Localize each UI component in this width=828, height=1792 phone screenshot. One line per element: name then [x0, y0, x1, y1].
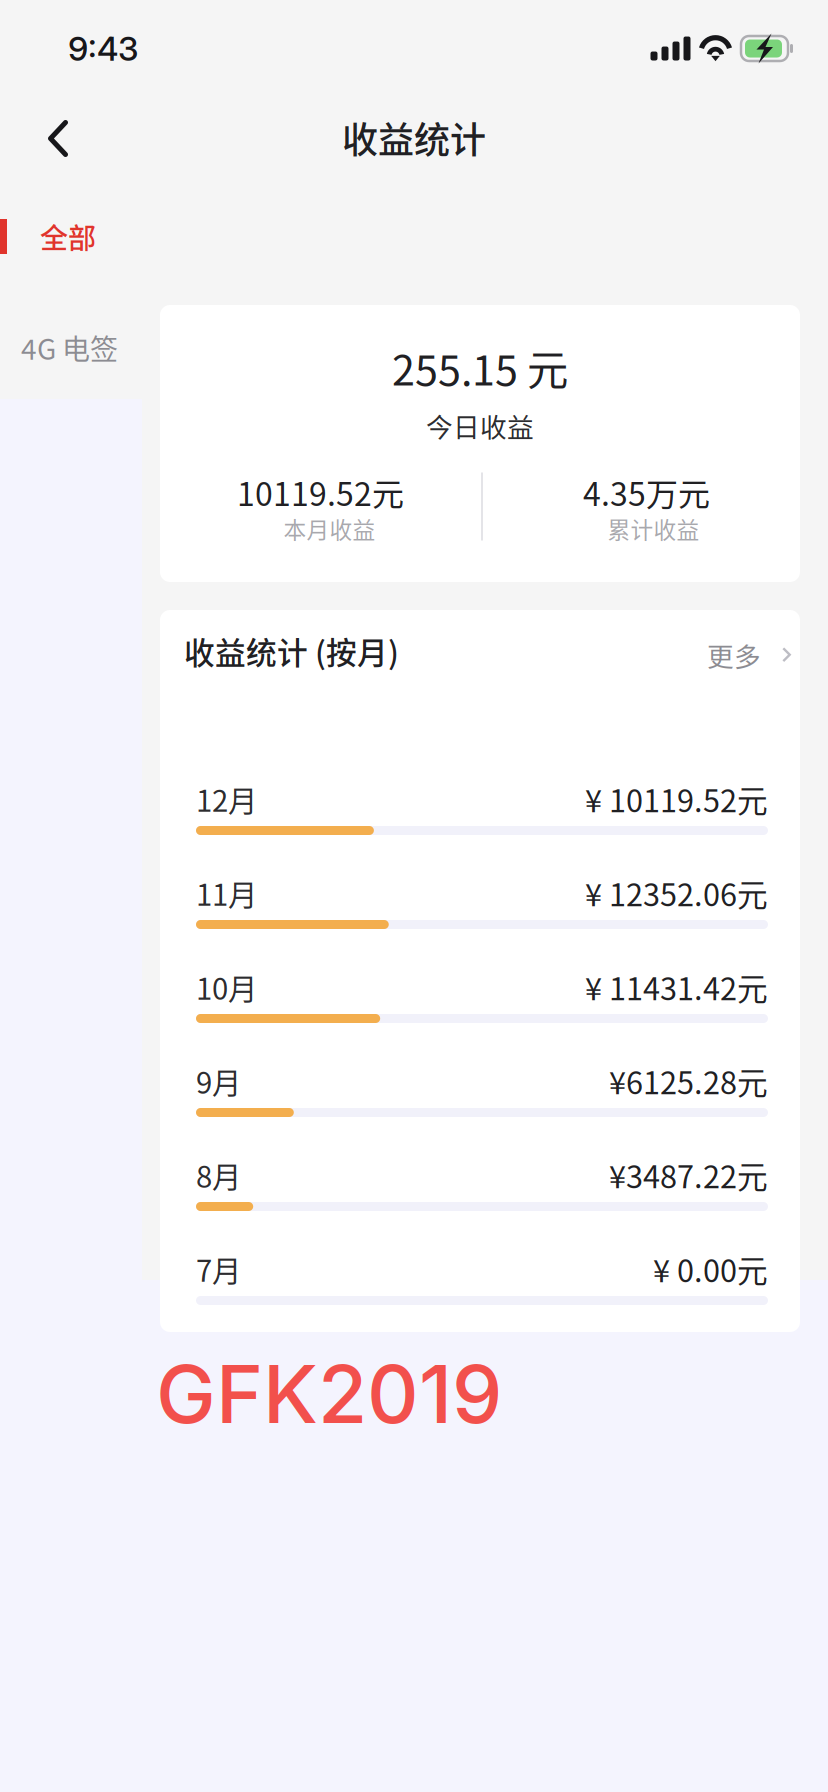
staticText: 更多 — [707, 636, 761, 674]
staticText: 收益统计 — [342, 111, 486, 163]
staticText: 11月 — [196, 872, 257, 914]
button[interactable]: 更多 — [703, 620, 795, 682]
staticText: 4.35万元 — [583, 469, 710, 515]
staticText: ¥6125.28元 — [609, 1059, 768, 1103]
staticText: ¥ 0.00元 — [653, 1247, 768, 1291]
button[interactable]: Back — [0, 97, 124, 178]
staticText: ¥ 11431.42元 — [585, 965, 768, 1009]
staticText: 7月 — [196, 1248, 241, 1290]
staticText: 累计收益 — [607, 512, 699, 545]
staticText: 255.15 元 — [392, 338, 568, 397]
staticText: 本月收益 — [283, 512, 375, 545]
staticText: 今日收益 — [426, 406, 534, 445]
staticText: 10月 — [196, 966, 257, 1008]
button[interactable]: 全部 — [0, 178, 142, 295]
staticText: ¥ 12352.06元 — [585, 871, 768, 915]
staticText: 10119.52元 — [237, 469, 404, 515]
staticText: 9月 — [196, 1060, 241, 1102]
button[interactable]: 4G 电签 — [0, 295, 142, 400]
staticText: 8月 — [196, 1154, 241, 1196]
staticText: ¥ 10119.52元 — [585, 777, 768, 821]
staticText: 12月 — [196, 778, 257, 820]
staticText: 9:43 — [68, 28, 138, 69]
staticText: 4G 电签 — [21, 327, 118, 368]
staticText: 收益统计 (按月) — [184, 629, 399, 673]
staticText: 全部 — [40, 216, 96, 257]
staticText: GFK2019 — [156, 1346, 502, 1442]
staticText: ¥3487.22元 — [609, 1153, 768, 1197]
